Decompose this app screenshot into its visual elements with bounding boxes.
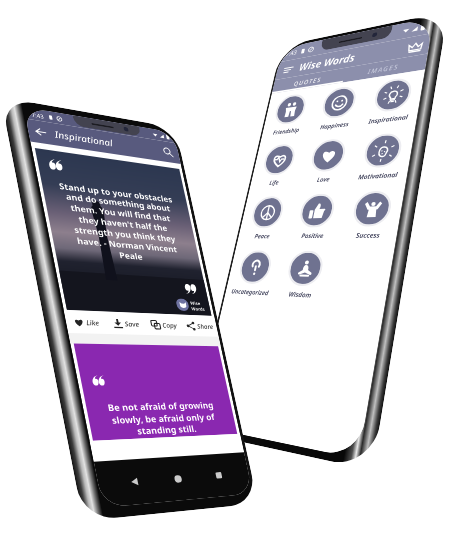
staticText: Uncategorized: [8, 264, 49, 272]
button[interactable]: Back: [43, 360, 61, 378]
staticText: Share: [146, 213, 163, 222]
button[interactable]: Save: [56, 206, 93, 228]
staticText: Life: [23, 154, 34, 162]
staticText: Stand up to your obstacles and do someth…: [34, 77, 152, 154]
staticText: Like: [37, 213, 49, 222]
button[interactable]: Share: [130, 206, 167, 228]
staticText: Peace: [20, 209, 37, 217]
button[interactable]: Love: [63, 117, 98, 162]
button[interactable]: Peace: [11, 172, 46, 217]
button[interactable]: Success: [115, 172, 150, 217]
staticText: Positive: [70, 209, 92, 217]
staticText: Motivational: [114, 154, 150, 162]
button[interactable]: Life: [11, 117, 46, 162]
button[interactable]: Friendship: [11, 62, 46, 107]
staticText: Copy: [110, 213, 125, 222]
staticText: Be not afraid of growing slowly, be afra…: [36, 293, 150, 327]
button[interactable]: Uncategorized: [7, 227, 50, 272]
button[interactable]: Motivational: [113, 117, 151, 162]
staticText: Love: [74, 154, 87, 162]
button[interactable]: Copy: [93, 206, 130, 228]
staticText: Success: [122, 209, 144, 217]
button[interactable]: Wisdom: [63, 227, 98, 272]
button[interactable]: Home: [84, 360, 102, 378]
staticText: Save: [73, 213, 87, 222]
button[interactable]: Like: [19, 206, 56, 228]
staticText: Friendship: [14, 99, 44, 107]
staticText: Wise Words: [144, 190, 159, 202]
button[interactable]: Positive: [63, 172, 98, 217]
